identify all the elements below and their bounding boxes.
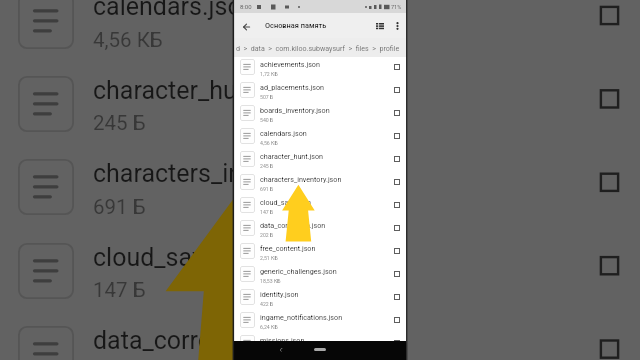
staticText: 691 Б — [260, 186, 274, 192]
staticText: 2,51 КБ — [260, 255, 278, 261]
staticText: 4,56 КБ — [93, 28, 163, 52]
button[interactable]: Выбрать achievements.json — [394, 64, 401, 71]
button[interactable]: Назад — [278, 346, 285, 353]
staticText: cloud_save.json — [93, 243, 271, 272]
button[interactable]: Выбрать cloud_save.json — [394, 202, 401, 209]
staticText: ad_placements.json — [260, 83, 325, 91]
button[interactable]: Домой — [314, 348, 326, 351]
staticText: free_content.json — [260, 244, 316, 252]
staticText: 18,53 КБ — [260, 278, 281, 284]
staticText: characters_inventory.json — [93, 159, 377, 188]
staticText: data_correction.json — [260, 221, 326, 229]
button[interactable]: character_hunt.json — [234, 150, 406, 173]
staticText: Основная память — [265, 21, 327, 30]
button[interactable]: boards_inventory.json — [234, 104, 406, 127]
button[interactable]: missions.json — [234, 334, 406, 357]
staticText: calendars.json — [93, 0, 256, 21]
button[interactable]: calendars.json — [234, 127, 406, 150]
button[interactable]: Выбрать character_hunt.json — [394, 156, 401, 163]
button[interactable]: ingame_notifications.json — [234, 311, 406, 334]
staticText: cloud_save.json — [260, 198, 312, 206]
staticText: missions.json — [260, 336, 305, 344]
button[interactable]: generic_challenges.json — [234, 265, 406, 288]
staticText: 245 Б — [260, 163, 274, 169]
button[interactable]: free_content.json — [234, 242, 406, 265]
staticText: 4,56 КБ — [260, 140, 278, 146]
button[interactable]: Выбрать calendars.json — [394, 133, 401, 140]
button[interactable]: achievements.json — [234, 58, 406, 81]
button[interactable]: data_correction.json — [234, 219, 406, 242]
staticText: 6,24 КБ — [260, 324, 278, 330]
button[interactable]: Выбрать missions.json — [394, 340, 401, 347]
staticText: 147 Б — [93, 278, 146, 302]
staticText: identity.json — [260, 290, 299, 298]
button[interactable]: Выбрать free_content.json — [394, 248, 401, 255]
staticText: d > data > com.kiloo.subwaysurf > files … — [236, 44, 400, 52]
staticText: 147 Б — [260, 209, 274, 215]
button[interactable]: cloud_save.json — [234, 196, 406, 219]
button[interactable]: characters_inventory.json — [234, 173, 406, 196]
staticText: 8:00 — [240, 3, 252, 10]
staticText: 71% — [391, 4, 402, 10]
staticText: boards_inventory.json — [260, 106, 330, 114]
staticText: achievements.json — [260, 60, 320, 68]
staticText: characters_inventory.json — [260, 175, 342, 183]
button[interactable]: Вид списка — [373, 19, 387, 33]
staticText: 245 Б — [93, 111, 146, 135]
staticText: generic_challenges.json — [260, 267, 337, 275]
staticText: calendars.json — [260, 129, 307, 137]
button[interactable]: Выбрать identity.json — [394, 294, 401, 301]
staticText: character_hunt.json — [93, 76, 313, 105]
button[interactable]: Выбрать generic_challenges.json — [394, 271, 401, 278]
staticText: 422 Б — [260, 301, 274, 307]
button[interactable]: ad_placements.json — [234, 81, 406, 104]
staticText: 202 Б — [260, 232, 274, 238]
button[interactable]: Выбрать characters_inventory.json — [394, 179, 401, 186]
button[interactable]: Выбрать ingame_notifications.json — [394, 317, 401, 324]
staticText: 691 Б — [93, 195, 146, 219]
button[interactable]: Ещё — [391, 20, 403, 32]
staticText: ingame_notifications.json — [260, 313, 343, 321]
button[interactable]: identity.json — [234, 288, 406, 311]
staticText: 1,72 КБ — [260, 71, 278, 77]
staticText: 540 Б — [260, 117, 274, 123]
button[interactable]: Назад — [242, 22, 251, 31]
staticText: data_correction.json — [93, 326, 321, 355]
staticText: 507 Б — [260, 94, 274, 100]
button[interactable]: Выбрать boards_inventory.json — [394, 110, 401, 117]
button[interactable]: Выбрать data_correction.json — [394, 225, 401, 232]
button[interactable]: Выбрать ad_placements.json — [394, 87, 401, 94]
staticText: character_hunt.json — [260, 152, 324, 160]
